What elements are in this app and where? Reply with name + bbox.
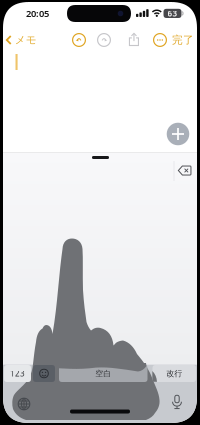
button[interactable]: Emoji — [33, 365, 55, 382]
button[interactable]: Undo — [71, 32, 87, 48]
staticText: 123 — [10, 368, 25, 379]
staticText: 完了 — [172, 33, 194, 46]
button[interactable]: More — [152, 32, 168, 48]
staticText: 63 — [167, 8, 177, 19]
staticText: 20:05 — [26, 7, 49, 20]
button[interactable]: 空白 — [59, 365, 147, 382]
button[interactable]: Next keyboard — [17, 397, 31, 411]
button[interactable]: 改行 — [152, 365, 196, 382]
button[interactable]: Redo — [96, 32, 112, 48]
button[interactable]: メモ — [5, 32, 37, 48]
button[interactable]: Delete — [178, 165, 192, 176]
button[interactable]: 123 — [4, 365, 31, 382]
button[interactable]: Add — [166, 122, 189, 145]
button[interactable]: Share — [128, 32, 140, 46]
button[interactable]: 完了 — [170, 33, 196, 47]
staticText: 空白 — [95, 369, 111, 378]
staticText: 改行 — [166, 369, 182, 378]
button[interactable]: Dictate — [171, 395, 183, 409]
staticText: メモ — [15, 33, 37, 46]
